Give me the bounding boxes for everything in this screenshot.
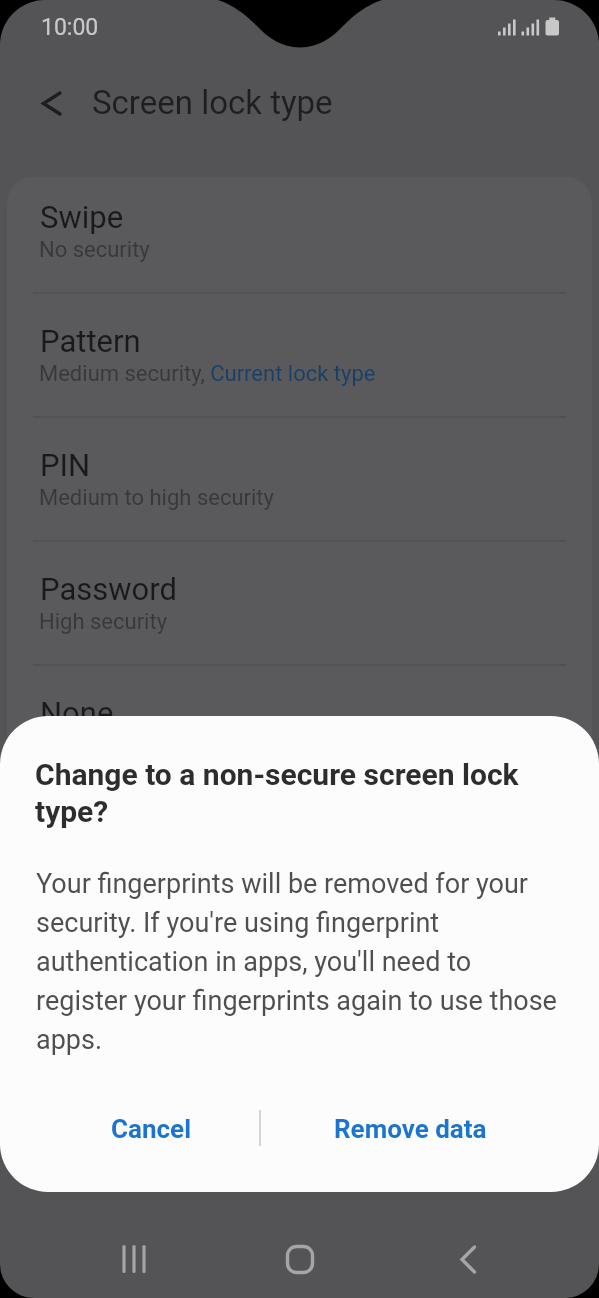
staticText: Screen lock type — [92, 83, 333, 122]
staticText: None — [40, 695, 114, 731]
button[interactable] — [428, 1229, 508, 1289]
button[interactable]: Remove data — [320, 1105, 500, 1153]
staticText: Your fingerprints will be removed for yo… — [36, 868, 557, 1055]
staticText: Password — [40, 571, 177, 607]
staticText: Medium to high security — [39, 485, 274, 511]
button[interactable]: None — [7, 673, 592, 797]
staticText: No security — [39, 237, 150, 263]
button[interactable] — [260, 1229, 340, 1289]
button[interactable]: Swipe — [7, 177, 592, 301]
staticText: Change to a non-secure screen lock type? — [35, 757, 519, 830]
staticText: PIN — [40, 447, 91, 483]
staticText: Swipe — [40, 199, 124, 235]
button[interactable]: PIN — [7, 425, 592, 549]
staticText: Medium security, Current lock type — [39, 361, 376, 387]
button[interactable] — [22, 75, 80, 133]
staticText: High security — [39, 609, 168, 635]
button[interactable]: Password — [7, 549, 592, 673]
staticText: Pattern — [40, 323, 141, 359]
staticText: 10:00 — [41, 14, 99, 41]
staticText: Cancel — [111, 1114, 192, 1144]
button[interactable]: Pattern — [7, 301, 592, 425]
button[interactable] — [94, 1229, 174, 1289]
staticText: Remove data — [334, 1114, 487, 1144]
button[interactable]: Cancel — [76, 1105, 226, 1153]
